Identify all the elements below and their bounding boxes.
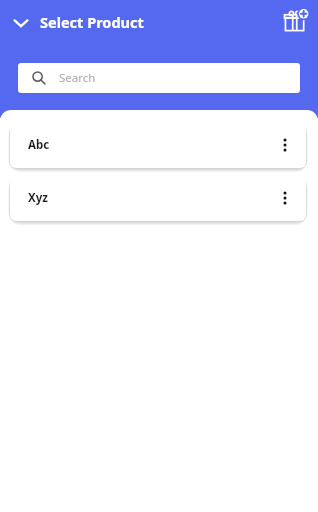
staticText: Search xyxy=(59,70,96,86)
button[interactable]: More options for Xyz xyxy=(270,183,300,213)
button[interactable]: Abc xyxy=(10,122,306,168)
button[interactable]: Collapse xyxy=(4,6,38,40)
button[interactable]: Add gift card xyxy=(280,5,312,37)
button[interactable]: Xyz xyxy=(10,175,306,221)
button[interactable]: More options for Abc xyxy=(270,130,300,160)
staticText: Xyz xyxy=(28,190,48,206)
button[interactable]: Search xyxy=(18,63,300,93)
staticText: Abc xyxy=(28,137,50,153)
staticText: Select Product xyxy=(40,12,144,32)
